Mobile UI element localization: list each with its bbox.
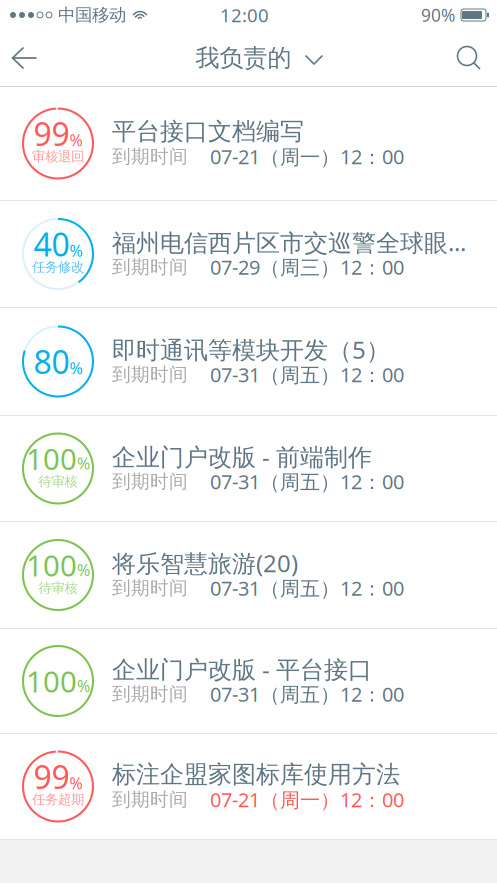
staticText: 80 xyxy=(33,340,69,383)
staticText: 07-31（周五）12：00 xyxy=(210,468,404,495)
staticText: 平台接口文档编写 xyxy=(112,117,304,146)
button[interactable]: 100 xyxy=(0,522,497,629)
staticText: 将乐智慧旅游(20) xyxy=(112,547,298,579)
staticText: % xyxy=(77,559,90,580)
staticText: 到期时间 xyxy=(112,576,188,599)
staticText: 任务修改 xyxy=(32,259,84,275)
staticText: 40 xyxy=(33,223,69,265)
staticText: 07-29（周三）12：00 xyxy=(210,254,404,280)
staticText: 07-21（周一）12：00 xyxy=(210,786,404,813)
button[interactable]: Back xyxy=(0,30,49,86)
staticText: 90% xyxy=(421,3,455,26)
staticText: 07-31（周五）12：00 xyxy=(210,681,404,707)
staticText: % xyxy=(77,453,90,474)
button[interactable]: 我负责的 xyxy=(184,30,312,86)
staticText: 07-21（周一）12：00 xyxy=(210,143,404,170)
staticText: 99 xyxy=(33,755,69,798)
staticText: 到期时间 xyxy=(112,145,188,168)
button[interactable]: 80 xyxy=(0,308,497,416)
staticText: 审核退回 xyxy=(32,148,84,165)
button[interactable]: Search xyxy=(441,30,497,86)
staticText: 100 xyxy=(26,439,77,478)
button[interactable]: 100 xyxy=(0,416,497,522)
staticText: 99 xyxy=(33,112,69,155)
staticText: 福州电信西片区市交巡警全球眼网...(30) xyxy=(112,226,487,258)
staticText: 我负责的 xyxy=(195,43,291,73)
staticText: 中国移动 xyxy=(58,4,126,26)
staticText: 到期时间 xyxy=(112,363,188,386)
staticText: 07-31（周五）12：00 xyxy=(210,361,404,388)
button[interactable]: 99 xyxy=(0,734,497,840)
staticText: 100 xyxy=(26,661,77,700)
staticText: 企业门户改版 - 平台接口 xyxy=(112,653,372,685)
staticText: 12:00 xyxy=(220,3,269,27)
staticText: % xyxy=(69,240,82,261)
staticText: 即时通讯等模块开发（5） xyxy=(112,334,390,365)
staticText: 任务超期 xyxy=(32,791,84,808)
staticText: 到期时间 xyxy=(112,470,188,493)
button[interactable]: 100 xyxy=(0,629,497,734)
staticText: 到期时间 xyxy=(112,255,188,278)
staticText: 标注企盟家图标库使用方法 xyxy=(112,760,400,789)
button[interactable]: 99 xyxy=(0,87,497,201)
staticText: 企业门户改版 - 前端制作 xyxy=(112,441,372,472)
staticText: 待审核 xyxy=(38,473,77,490)
staticText: % xyxy=(77,675,90,696)
staticText: 到期时间 xyxy=(112,682,188,705)
staticText: 待审核 xyxy=(38,580,77,596)
staticText: % xyxy=(69,129,82,151)
staticText: % xyxy=(69,772,82,794)
button[interactable]: 40 xyxy=(0,201,497,308)
staticText: 到期时间 xyxy=(112,788,188,811)
staticText: 100 xyxy=(26,545,77,584)
staticText: 07-31（周五）12：00 xyxy=(210,575,404,601)
staticText: % xyxy=(69,357,82,379)
